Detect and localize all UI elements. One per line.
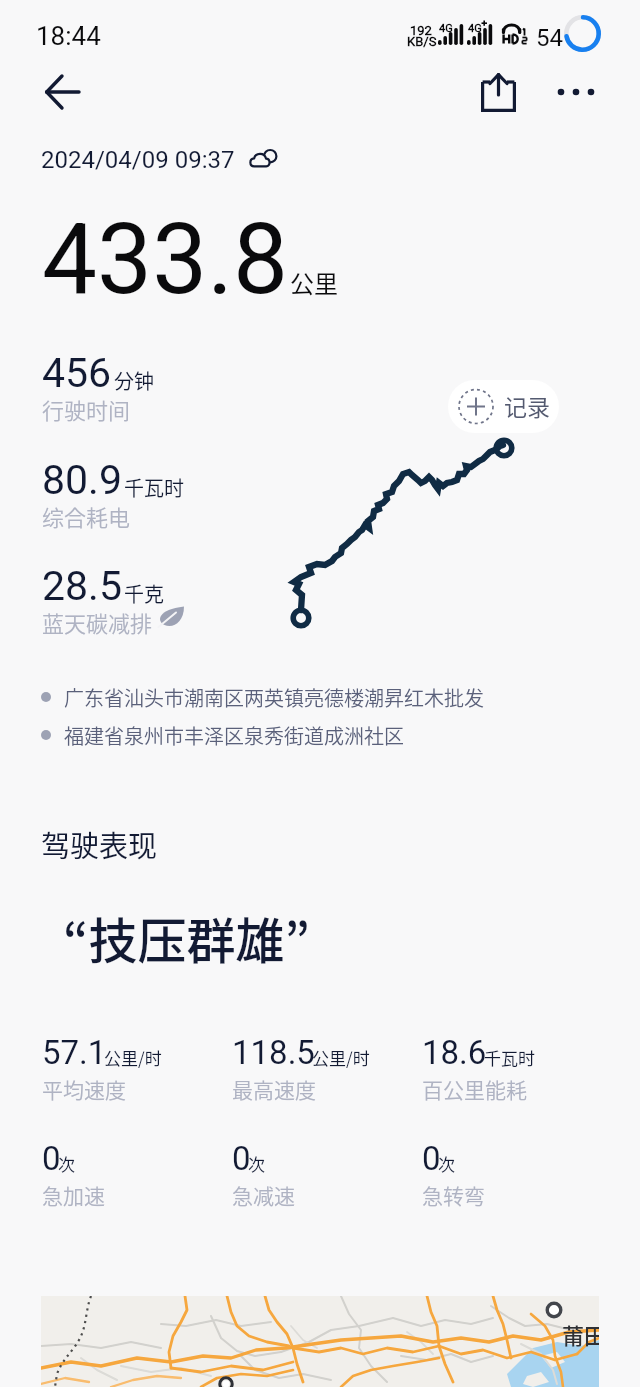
button[interactable]: Share [468, 62, 528, 122]
staticText: 28.5 [42, 557, 122, 617]
staticText: 0 [232, 1135, 251, 1183]
staticText: 最高速度 [232, 1074, 316, 1104]
staticText: 54 [536, 21, 563, 56]
staticText: 0 [422, 1135, 441, 1183]
staticText: 433.8 [42, 190, 289, 334]
staticText: 公里/时 [104, 1045, 162, 1070]
staticText: 公里/时 [312, 1045, 370, 1070]
staticText: 18.6 [422, 1029, 487, 1077]
staticText: 公里 [290, 265, 338, 300]
staticText: 次 [438, 1151, 455, 1176]
staticText: 0 [42, 1135, 61, 1183]
staticText: 80.9 [42, 451, 122, 511]
staticText: 行驶时间 [42, 393, 131, 425]
button[interactable]: Back [33, 62, 93, 122]
staticText: 急减速 [232, 1180, 295, 1210]
staticText: 莆田市 [562, 1318, 599, 1350]
staticText: 18:44 [36, 18, 101, 56]
staticText: 118.5 [232, 1029, 315, 1077]
staticText: 百公里能耗 [422, 1074, 527, 1104]
staticText: 次 [248, 1151, 265, 1176]
staticText: 广东省汕头市潮南区两英镇亮德楼潮昇红木批发 [64, 683, 484, 712]
staticText: 57.1 [42, 1029, 107, 1077]
staticText: 急加速 [42, 1180, 105, 1210]
staticText: 次 [58, 1151, 75, 1176]
staticText: 2024/04/09 09:37 [41, 143, 235, 178]
staticText: “技压群雄” [63, 902, 310, 973]
staticText: 千瓦时 [124, 473, 184, 502]
staticText: 福建省泉州市丰泽区泉秀街道成洲社区 [64, 721, 404, 750]
staticText: 千瓦时 [484, 1045, 535, 1070]
button[interactable]: 记录 [448, 380, 559, 433]
staticText: 综合耗电 [42, 500, 131, 532]
staticText: 驾驶表现 [41, 823, 158, 865]
staticText: 千克 [124, 579, 164, 608]
staticText: 平均速度 [42, 1074, 126, 1104]
staticText: KB/S [407, 32, 437, 51]
staticText: 192 [410, 21, 432, 40]
staticText: 4G [439, 20, 453, 36]
staticText: 记录 [504, 389, 550, 422]
button[interactable]: 莆田市 [41, 1296, 599, 1387]
staticText: 456 [42, 344, 112, 404]
staticText: 急转弯 [422, 1180, 485, 1210]
staticText: 分钟 [114, 366, 154, 395]
button[interactable]: More options [546, 62, 606, 122]
staticText: 4G [468, 20, 482, 36]
staticText: 蓝天碳减排 [42, 606, 153, 638]
